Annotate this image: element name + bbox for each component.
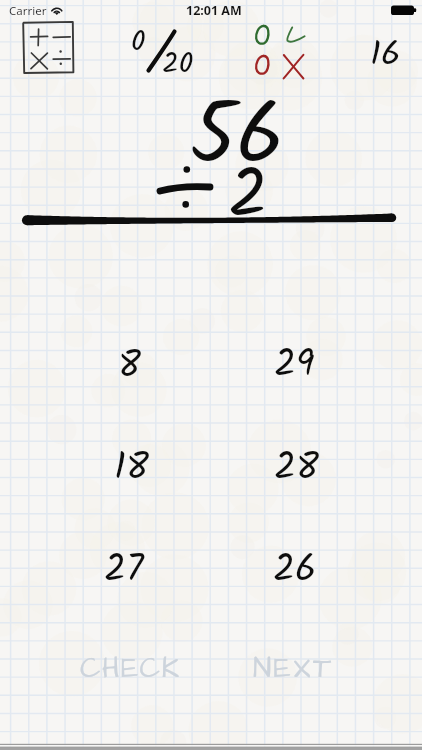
button[interactable]: 28 xyxy=(274,439,319,500)
staticText: 16 xyxy=(370,28,401,84)
button[interactable]: 29 xyxy=(274,336,315,397)
staticText: 56 xyxy=(190,71,284,208)
button[interactable]: Operations xyxy=(16,16,80,80)
staticText: 12:01 AM xyxy=(186,2,242,19)
button[interactable]: 18 xyxy=(114,439,149,500)
staticText: 20 xyxy=(162,42,194,88)
staticText: 2 xyxy=(228,143,269,253)
staticText: Carrier xyxy=(9,3,47,19)
button[interactable]: NEXT xyxy=(253,648,334,688)
button[interactable]: 8 xyxy=(118,337,141,398)
button[interactable]: CHECK xyxy=(80,648,181,688)
button[interactable]: 26 xyxy=(273,541,317,602)
button[interactable]: 27 xyxy=(104,541,144,602)
staticText: 0 xyxy=(131,20,146,66)
